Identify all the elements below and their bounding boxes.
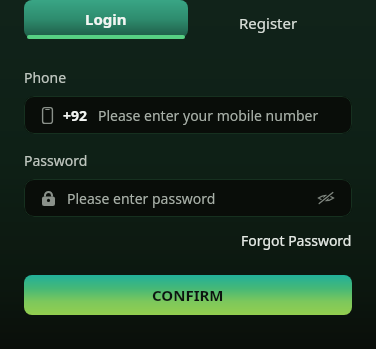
staticText: Forgot Password xyxy=(241,231,352,250)
staticText: CONFIRM xyxy=(152,285,224,305)
staticText: Login xyxy=(85,9,127,29)
staticText: Please enter your mobile number xyxy=(98,106,319,125)
button[interactable]: Forgot Password xyxy=(241,231,352,250)
button[interactable]: Login xyxy=(24,0,188,46)
staticText: +92 xyxy=(63,106,88,125)
staticText: Password xyxy=(24,151,88,170)
button[interactable]: Password xyxy=(24,179,352,217)
button[interactable]: CONFIRM xyxy=(24,275,352,315)
button[interactable]: Show password xyxy=(314,186,338,210)
staticText: Please enter password xyxy=(67,189,314,208)
other: Password xyxy=(42,190,55,206)
button[interactable]: Register xyxy=(188,0,348,46)
staticText: Phone xyxy=(24,68,67,87)
other: Phone xyxy=(42,107,53,124)
staticText: Register xyxy=(239,13,298,33)
button[interactable]: Phone xyxy=(24,96,352,134)
